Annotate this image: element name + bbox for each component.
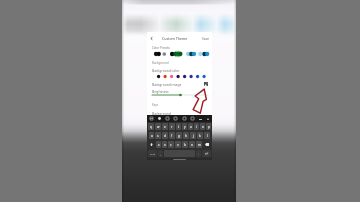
button[interactable]: Back bbox=[147, 34, 156, 43]
staticText: j bbox=[193, 134, 194, 138]
button[interactable]: y bbox=[182, 123, 187, 130]
button[interactable]: More tools bbox=[198, 117, 203, 121]
staticText: w bbox=[157, 125, 160, 129]
staticText: Color Presets bbox=[152, 46, 170, 50]
staticText: x bbox=[164, 143, 166, 147]
staticText: Brightness bbox=[152, 89, 169, 93]
button[interactable]: h bbox=[183, 132, 189, 139]
staticText: Keys bbox=[152, 103, 159, 107]
staticText: v bbox=[177, 143, 179, 147]
staticText: y bbox=[184, 125, 186, 129]
button[interactable]: j bbox=[190, 132, 196, 139]
button[interactable]: m bbox=[196, 141, 202, 148]
staticText: Custom Theme bbox=[162, 36, 188, 41]
button[interactable]: t bbox=[176, 123, 181, 130]
button[interactable]: Background image bbox=[147, 80, 212, 88]
button[interactable]: Save bbox=[200, 34, 212, 42]
staticText: . bbox=[198, 152, 199, 156]
staticText: c bbox=[170, 143, 172, 147]
staticText: p bbox=[208, 125, 210, 129]
staticText: g bbox=[178, 134, 180, 138]
staticText: d bbox=[164, 134, 166, 138]
staticText: r bbox=[171, 125, 173, 129]
button[interactable]: Enter bbox=[202, 150, 211, 157]
button[interactable]: k bbox=[197, 132, 203, 139]
button[interactable] bbox=[151, 50, 208, 58]
staticText: t bbox=[178, 125, 180, 129]
staticText: Save bbox=[202, 36, 210, 40]
button[interactable]: c bbox=[168, 141, 174, 148]
button[interactable]: w bbox=[155, 123, 161, 130]
staticText: Background image bbox=[152, 82, 182, 86]
button[interactable]: q bbox=[148, 123, 154, 130]
staticText: l bbox=[207, 134, 208, 138]
staticText: f bbox=[171, 134, 173, 138]
staticText: a bbox=[151, 134, 153, 138]
staticText: Background bbox=[152, 111, 171, 115]
button[interactable]: Shift bbox=[148, 141, 155, 148]
staticText: s bbox=[157, 134, 159, 138]
staticText: o bbox=[202, 125, 204, 129]
staticText: Background color bbox=[152, 68, 180, 72]
button[interactable]: u bbox=[188, 123, 193, 130]
button[interactable]: Hide keyboard bbox=[206, 117, 210, 121]
staticText: , bbox=[160, 152, 161, 156]
button[interactable] bbox=[157, 74, 207, 79]
button[interactable]: g bbox=[176, 132, 182, 139]
button[interactable]: v bbox=[175, 141, 181, 148]
button[interactable]: o bbox=[200, 123, 205, 130]
button[interactable]: f bbox=[169, 132, 175, 139]
button[interactable]: d bbox=[162, 132, 168, 139]
button[interactable]: b bbox=[182, 141, 188, 148]
button[interactable]: ?123 bbox=[148, 150, 157, 157]
button[interactable]: Keyboard tool bbox=[190, 116, 195, 121]
staticText: q bbox=[150, 125, 152, 129]
button[interactable]: Keyboard tool bbox=[157, 116, 162, 121]
button[interactable]: n bbox=[189, 141, 195, 148]
button[interactable]: a bbox=[149, 132, 154, 139]
staticText: m bbox=[198, 143, 201, 147]
staticText: ?123 bbox=[150, 152, 156, 155]
button[interactable]: Keyboard tool bbox=[182, 116, 187, 121]
staticText: e bbox=[164, 125, 166, 129]
button[interactable] bbox=[152, 93, 208, 97]
button[interactable]: . bbox=[196, 150, 201, 157]
button[interactable]: z bbox=[156, 141, 161, 148]
button[interactable]: i bbox=[194, 123, 199, 130]
staticText: h bbox=[185, 134, 187, 138]
button[interactable]: p bbox=[206, 123, 211, 130]
button[interactable]: s bbox=[155, 132, 161, 139]
button[interactable]: e bbox=[162, 123, 168, 130]
button[interactable]: r bbox=[169, 123, 175, 130]
button[interactable]: Keyboard tool bbox=[165, 116, 170, 121]
staticText: Background bbox=[152, 61, 169, 65]
staticText: b bbox=[184, 143, 186, 147]
other: Choose image bbox=[204, 82, 208, 86]
button[interactable]: l bbox=[204, 132, 210, 139]
button[interactable]: Keyboard tool bbox=[149, 116, 154, 121]
staticText: n bbox=[191, 143, 193, 147]
button[interactable]: Backspace bbox=[203, 141, 211, 148]
staticText: k bbox=[199, 134, 201, 138]
staticText: u bbox=[190, 125, 192, 129]
staticText: i bbox=[196, 125, 197, 129]
staticText: z bbox=[158, 143, 160, 147]
button[interactable]: x bbox=[162, 141, 167, 148]
button[interactable]: Keyboard tool bbox=[173, 116, 178, 121]
button[interactable]: , bbox=[158, 150, 163, 157]
